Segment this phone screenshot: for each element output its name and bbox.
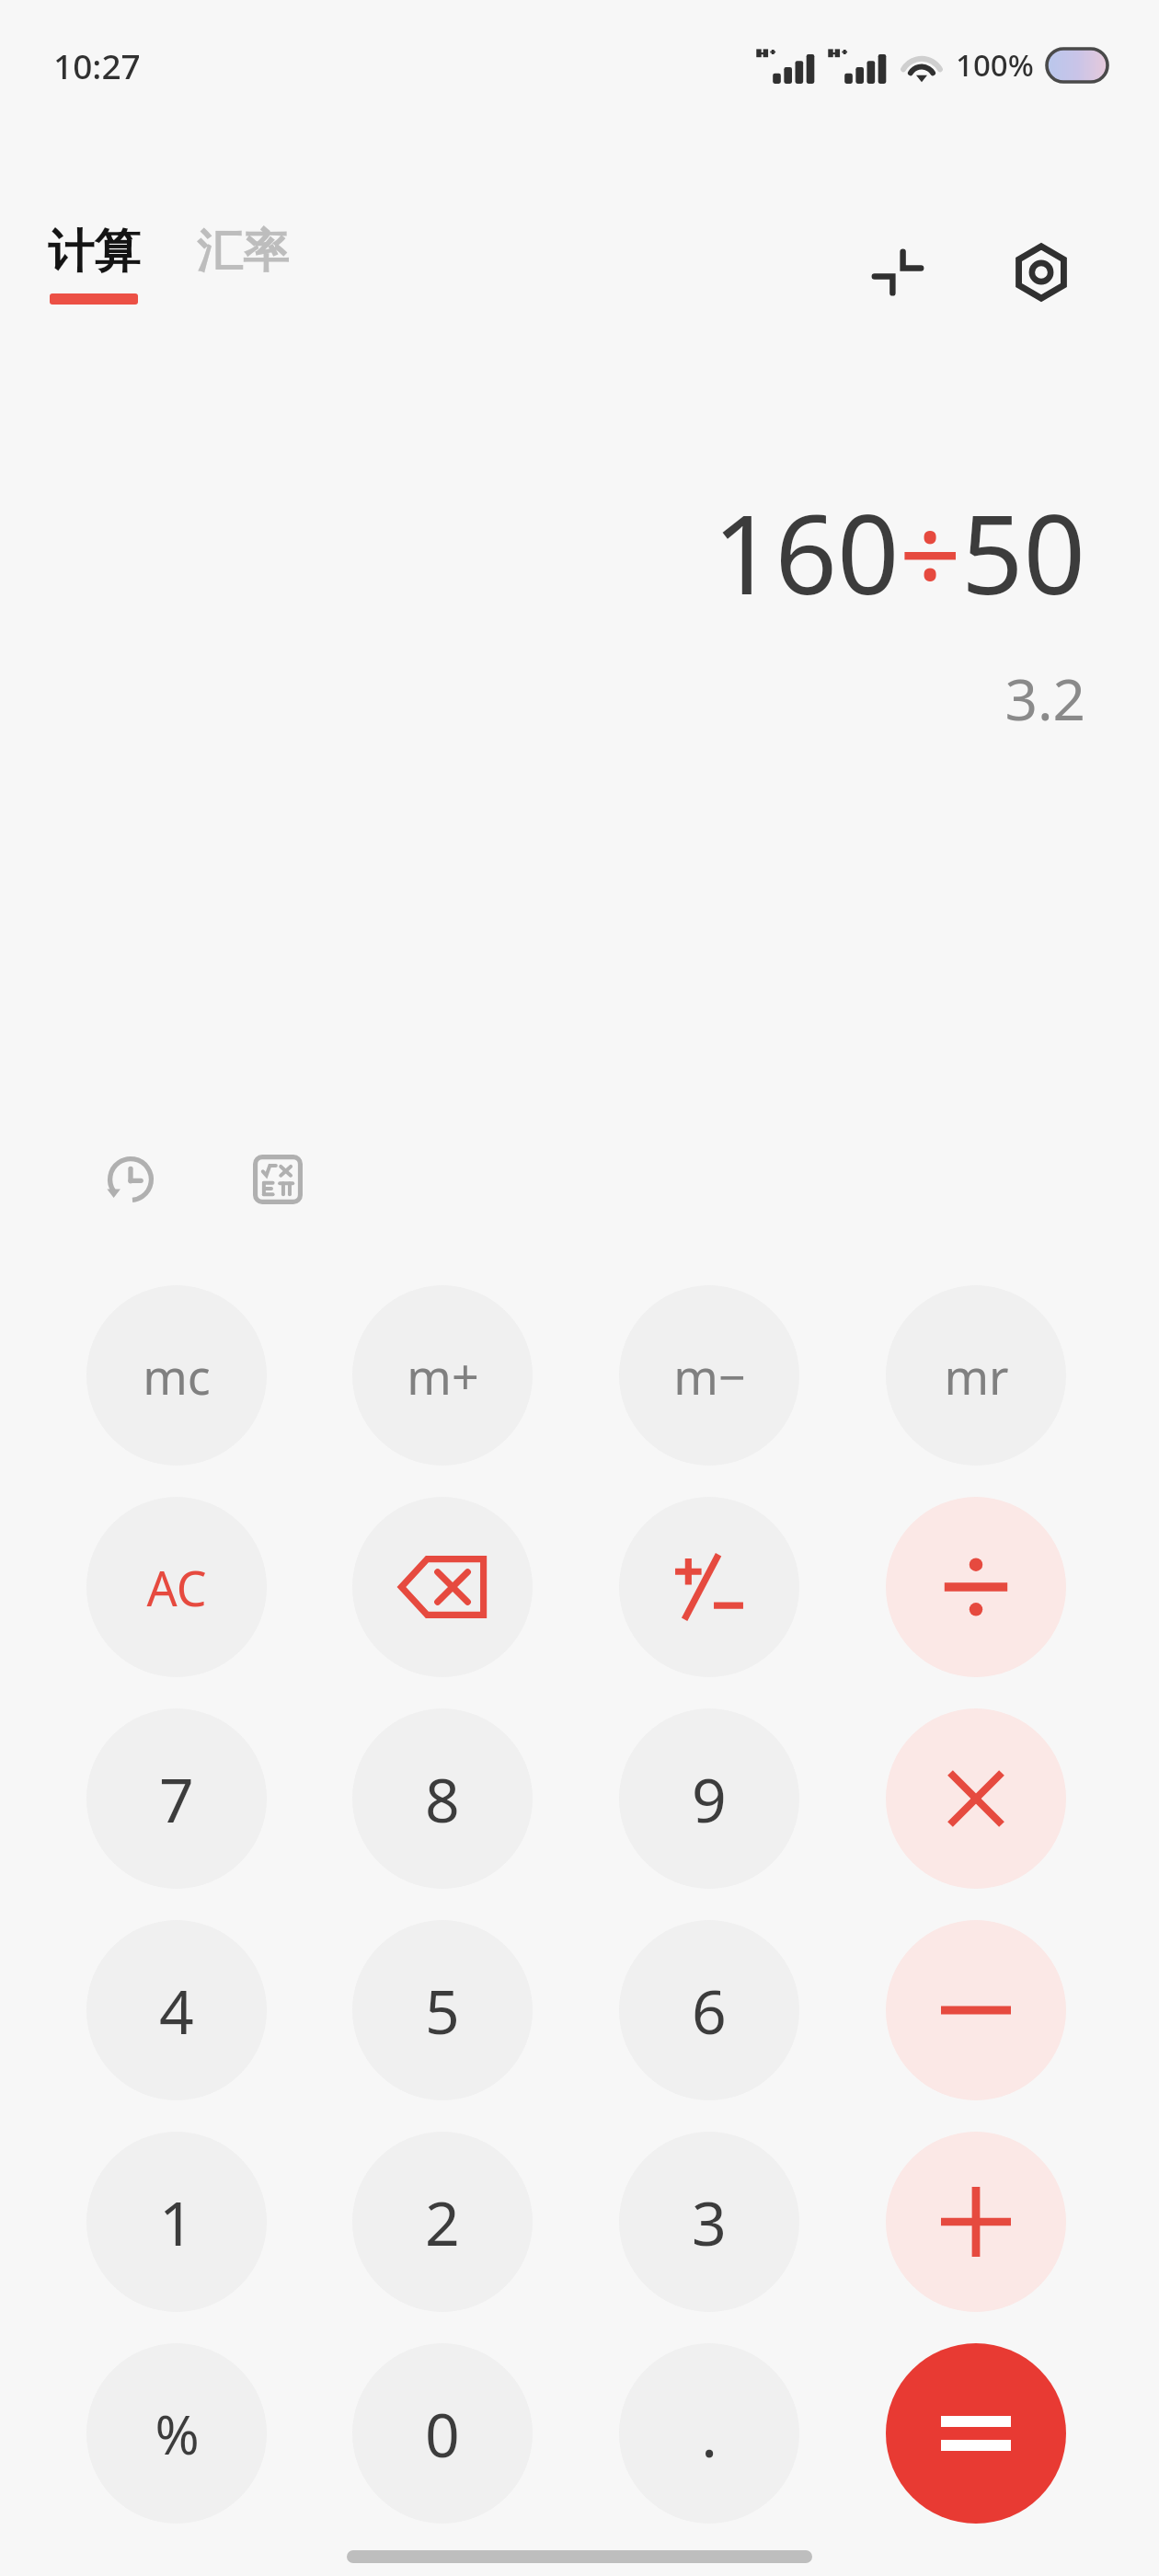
staticText: 6 — [692, 1969, 727, 2052]
button[interactable]: AC — [86, 1497, 267, 1677]
button[interactable]: 9 — [619, 1708, 799, 1889]
staticText: 4 — [159, 1969, 194, 2052]
button[interactable]: % — [86, 2343, 267, 2524]
button[interactable]: 2 — [352, 2132, 533, 2312]
button[interactable]: Settings — [999, 230, 1084, 315]
button[interactable]: . — [619, 2343, 799, 2524]
button[interactable]: Divide — [886, 1497, 1066, 1677]
staticText: 计算 — [48, 223, 140, 281]
staticText: m+ — [407, 1343, 479, 1409]
staticText: m− — [673, 1343, 746, 1409]
button[interactable]: 计算 — [42, 221, 145, 306]
staticText: % — [155, 2398, 200, 2470]
staticText: 10:27 — [53, 42, 141, 88]
staticText: 7 — [159, 1757, 194, 1840]
button[interactable]: 0 — [352, 2343, 533, 2524]
button[interactable]: Plus — [886, 2132, 1066, 2312]
staticText: 100% — [956, 44, 1034, 86]
staticText: mr — [944, 1343, 1009, 1409]
button[interactable]: m+ — [352, 1285, 533, 1466]
button[interactable]: Equals — [886, 2343, 1066, 2524]
button[interactable]: Backspace — [352, 1497, 533, 1677]
button[interactable]: Collapse — [855, 230, 940, 315]
staticText: 5 — [425, 1969, 460, 2052]
staticText: AC — [146, 1555, 207, 1620]
button[interactable]: Minus — [886, 1920, 1066, 2100]
button[interactable]: 6 — [619, 1920, 799, 2100]
button[interactable]: 1 — [86, 2132, 267, 2312]
button[interactable]: 汇率 — [191, 221, 294, 282]
staticText: 3.2 — [1004, 660, 1085, 737]
staticText: 3 — [692, 2180, 727, 2263]
staticText: 1 — [159, 2180, 194, 2263]
button[interactable]: mc — [86, 1285, 267, 1466]
staticText: 0 — [425, 2392, 460, 2475]
staticText: 汇率 — [197, 223, 289, 281]
button[interactable]: m− — [619, 1285, 799, 1466]
button[interactable]: Multiply — [886, 1708, 1066, 1889]
staticText: 2 — [425, 2180, 460, 2263]
button[interactable]: 8 — [352, 1708, 533, 1889]
button[interactable]: mr — [886, 1285, 1066, 1466]
button[interactable]: History — [88, 1137, 173, 1222]
staticText: 160÷50 — [713, 478, 1085, 627]
button[interactable]: 4 — [86, 1920, 267, 2100]
button[interactable]: 7 — [86, 1708, 267, 1889]
button[interactable]: 3 — [619, 2132, 799, 2312]
button[interactable]: Scientific mode — [235, 1137, 320, 1222]
button[interactable]: Plus minus — [619, 1497, 799, 1677]
button[interactable]: 5 — [352, 1920, 533, 2100]
staticText: 8 — [425, 1757, 460, 1840]
staticText: . — [701, 2392, 717, 2475]
staticText: mc — [143, 1343, 211, 1409]
staticText: 9 — [692, 1757, 727, 1840]
